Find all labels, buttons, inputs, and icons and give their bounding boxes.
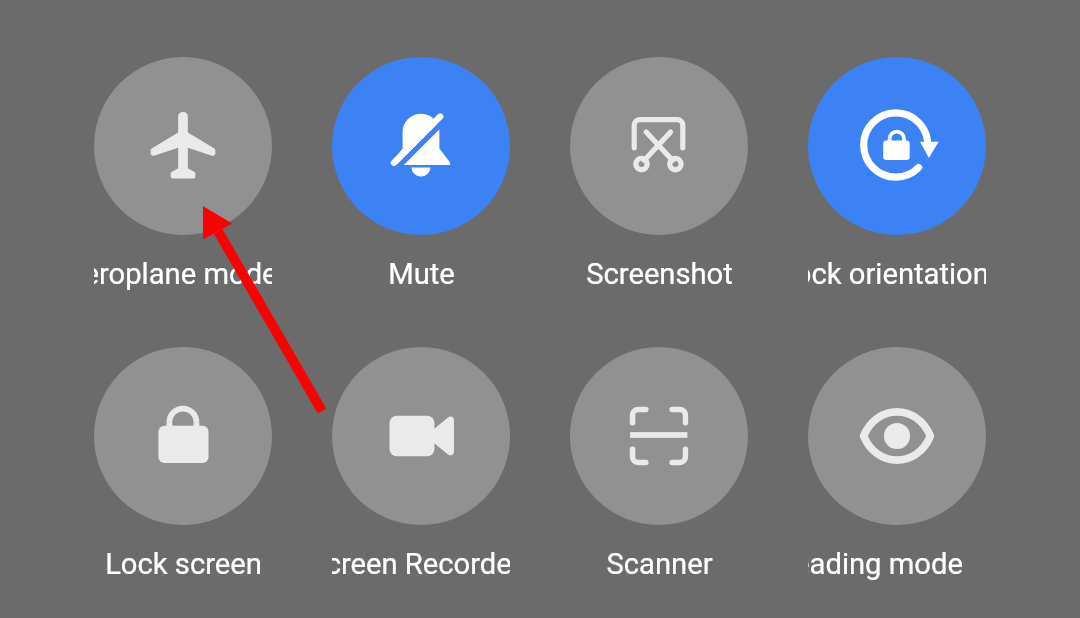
other: Mute	[332, 57, 510, 235]
button[interactable]: Lock screen	[94, 347, 272, 573]
button[interactable]: Screen Recorder	[332, 347, 510, 573]
other: Lock orientation	[808, 57, 986, 235]
other: Lock screen	[94, 347, 272, 525]
other: Screen Recorder	[332, 347, 510, 525]
button[interactable]: Aeroplane mode	[94, 57, 272, 283]
button[interactable]: Reading mode	[808, 347, 986, 573]
button[interactable]: Lock orientation	[808, 57, 986, 283]
staticText: Screen Recorder	[332, 547, 510, 581]
staticText: Aeroplane mode	[94, 257, 272, 291]
button[interactable]: Scanner	[570, 347, 748, 573]
other: Scanner	[570, 347, 748, 525]
other: Reading mode	[808, 347, 986, 525]
other: Aeroplane mode	[94, 57, 272, 235]
staticText: Scanner	[606, 547, 713, 581]
button[interactable]: Screenshot	[570, 57, 748, 283]
staticText: Lock orientation	[808, 257, 986, 291]
staticText: Screenshot	[586, 257, 733, 291]
staticText: Reading mode	[808, 547, 963, 581]
button[interactable]: Mute	[332, 57, 510, 283]
staticText: Mute	[388, 257, 455, 291]
staticText: Lock screen	[105, 547, 262, 581]
other: Screenshot	[570, 57, 748, 235]
